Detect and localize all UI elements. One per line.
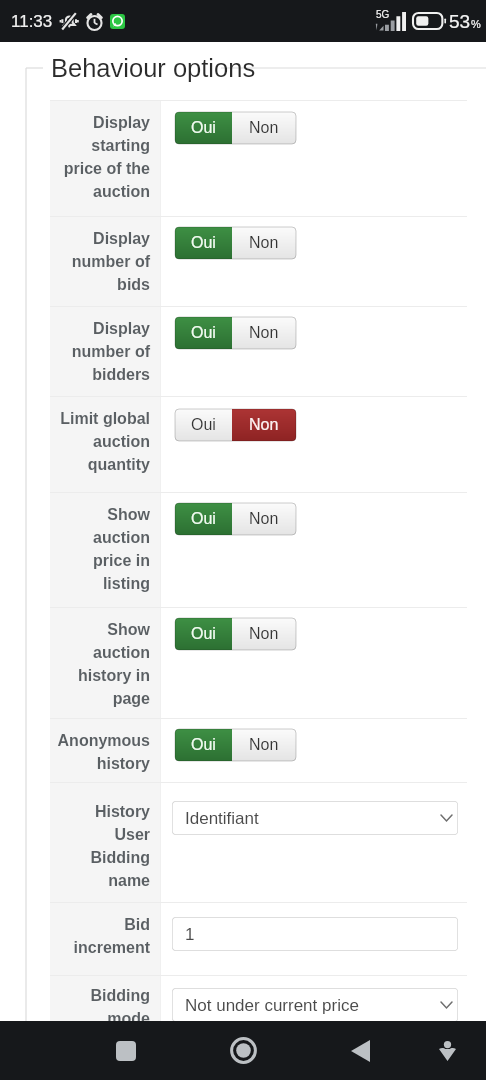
button[interactable]: Oui: [175, 227, 296, 259]
button[interactable]: Hide keyboard: [412, 1021, 483, 1080]
staticText: Non: [249, 119, 279, 137]
staticText: 1: [185, 925, 195, 944]
staticText: Non: [249, 234, 279, 252]
staticText: Non: [249, 416, 279, 434]
staticText: Show auction price in listing: [52, 506, 150, 593]
staticText: Oui: [191, 736, 216, 754]
staticText: Oui: [191, 625, 216, 643]
button[interactable]: Oui: [175, 112, 296, 144]
button[interactable]: Back: [320, 1021, 400, 1080]
staticText: Non: [249, 736, 279, 754]
staticText: 5G: [376, 9, 390, 20]
staticText: 11:33: [11, 12, 53, 31]
staticText: Bidding mode: [52, 987, 150, 1028]
staticText: Display number of bids: [52, 230, 150, 294]
staticText: Oui: [191, 234, 216, 252]
staticText: Display number of bidders: [52, 320, 150, 384]
button[interactable]: Identifiant: [172, 801, 458, 835]
button[interactable]: Recent apps: [86, 1021, 166, 1080]
staticText: Show auction history in page: [52, 621, 150, 708]
staticText: Bid increment: [52, 916, 150, 957]
staticText: 53: [449, 11, 471, 32]
button[interactable]: Oui: [175, 729, 296, 761]
button[interactable]: Oui: [175, 503, 296, 535]
staticText: Anonymous history: [52, 732, 150, 773]
button[interactable]: 1: [172, 917, 458, 951]
staticText: Oui: [191, 416, 216, 434]
staticText: Not under current price: [185, 996, 359, 1015]
staticText: History User Bidding name: [52, 803, 150, 890]
button[interactable]: Home: [203, 1021, 283, 1080]
staticText: Oui: [191, 510, 216, 528]
button[interactable]: Not under current price: [172, 988, 458, 1022]
staticText: Limit global auction quantity: [52, 410, 150, 474]
staticText: Oui: [191, 324, 216, 342]
button[interactable]: Oui: [175, 409, 296, 441]
staticText: Behaviour options: [51, 54, 256, 82]
staticText: %: [471, 18, 481, 30]
staticText: Identifiant: [185, 809, 259, 828]
button[interactable]: Oui: [175, 317, 296, 349]
staticText: Non: [249, 625, 279, 643]
button[interactable]: Oui: [175, 618, 296, 650]
staticText: Oui: [191, 119, 216, 137]
staticText: Non: [249, 510, 279, 528]
staticText: Display starting price of the auction: [52, 114, 150, 201]
staticText: Non: [249, 324, 279, 342]
